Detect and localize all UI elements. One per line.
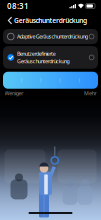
button[interactable]: Back bbox=[4, 12, 16, 28]
staticText: 08:31 bbox=[7, 1, 29, 11]
staticText: Mehr bbox=[84, 90, 96, 97]
button[interactable]: Benutzerdefinierte bbox=[3, 46, 98, 69]
staticText: Geräuschunterdrückung bbox=[17, 58, 69, 65]
button[interactable]: Adaptive Geräuschunterdrückung bbox=[3, 29, 98, 44]
staticText: Benutzerdefinierte bbox=[17, 50, 56, 57]
staticText: Adaptive Geräuschunterdrückung bbox=[17, 33, 88, 40]
staticText: Geräuschunterdrückung bbox=[14, 16, 87, 25]
staticText: Weniger bbox=[4, 90, 23, 97]
